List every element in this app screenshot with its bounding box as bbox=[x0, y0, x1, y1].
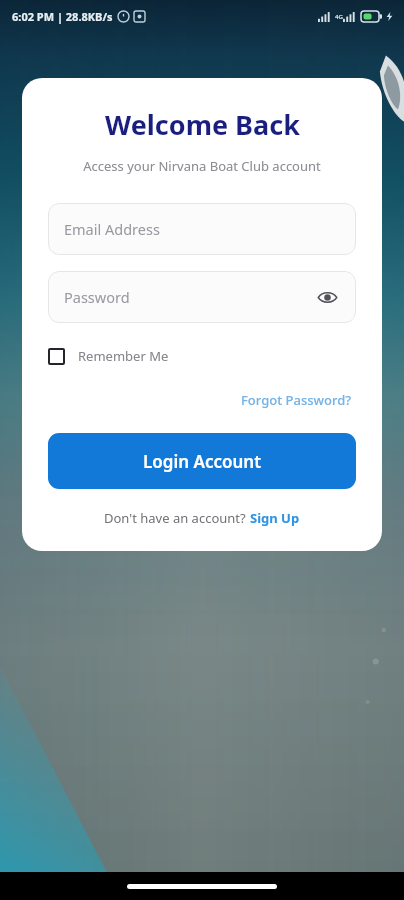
button[interactable]: Don't have an account? bbox=[104, 509, 300, 527]
button[interactable]: Forgot Password? bbox=[237, 387, 356, 413]
button[interactable]: Show password bbox=[314, 284, 340, 310]
staticText: Don't have an account? bbox=[104, 509, 250, 527]
staticText: 4G bbox=[335, 13, 343, 21]
button[interactable]: Password bbox=[48, 271, 356, 323]
staticText: Access your Nirvana Boat Club account bbox=[83, 157, 321, 175]
button[interactable]: Email Address bbox=[48, 203, 356, 255]
staticText: Password bbox=[64, 287, 130, 307]
staticText: 6:02 PM | 28.8KB/s bbox=[12, 9, 113, 24]
staticText: Forgot Password? bbox=[241, 391, 352, 409]
staticText: Login Account bbox=[143, 450, 262, 473]
staticText: Sign Up bbox=[250, 509, 300, 527]
staticText: Email Address bbox=[64, 219, 160, 239]
button[interactable]: Remember Me bbox=[48, 343, 356, 369]
button[interactable]: Login Account bbox=[48, 433, 356, 489]
staticText: Remember Me bbox=[78, 347, 169, 365]
staticText: Welcome Back bbox=[105, 106, 300, 143]
